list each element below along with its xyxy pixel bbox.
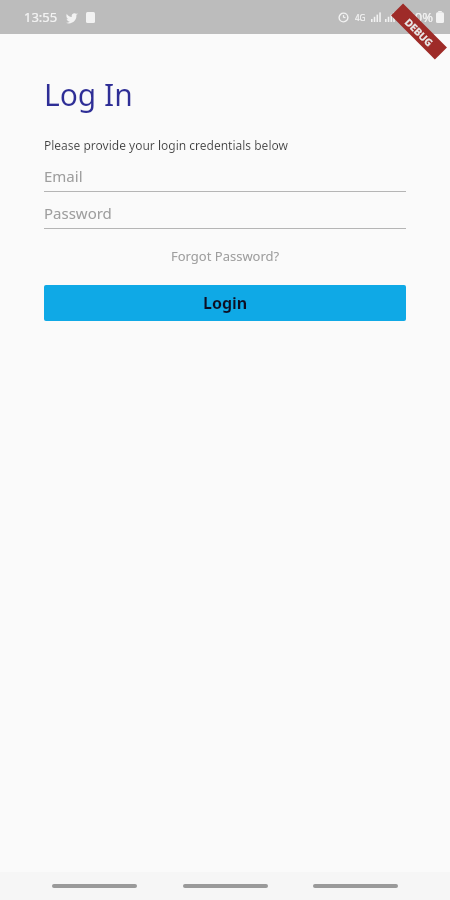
staticText: Login	[203, 292, 248, 314]
staticText: Password	[44, 203, 112, 223]
button[interactable]: Navigation button	[313, 884, 398, 888]
button[interactable]: Password	[44, 198, 406, 228]
button[interactable]: Forgot Password?	[0, 243, 450, 269]
other: Debug banner	[388, 0, 450, 62]
staticText: 13:55	[24, 8, 58, 26]
staticText: DEBUG	[402, 15, 436, 49]
button[interactable]: Navigation button	[183, 884, 268, 888]
button[interactable]: Email	[44, 161, 406, 191]
staticText: Email	[44, 166, 83, 186]
staticText: 100%	[400, 8, 434, 26]
button[interactable]: Navigation button	[52, 884, 137, 888]
staticText: 4G	[355, 12, 366, 23]
button[interactable]: Login	[44, 285, 406, 321]
staticText: Log In	[44, 74, 133, 115]
staticText: Forgot Password?	[171, 247, 280, 265]
staticText: Please provide your login credentials be…	[44, 137, 288, 153]
